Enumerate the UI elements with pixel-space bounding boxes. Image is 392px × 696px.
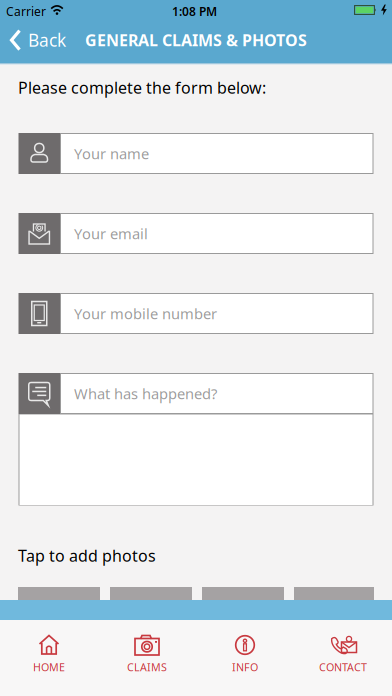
staticText: GENERAL CLAIMS & PHOTOS [85, 29, 307, 51]
button[interactable]: Add photo [202, 587, 284, 601]
button[interactable]: Your mobile number [18, 293, 373, 334]
staticText: Back [28, 29, 66, 52]
staticText: INFO [232, 660, 258, 674]
staticText: CLAIMS [127, 660, 167, 674]
button[interactable]: Your email [18, 213, 373, 254]
staticText: Please complete the form below: [18, 77, 266, 98]
staticText: Carrier [6, 3, 46, 19]
button[interactable]: HOME [0, 620, 98, 696]
button[interactable]: What has happened? [18, 373, 373, 505]
staticText: HOME [33, 660, 65, 674]
staticText: Your email [74, 224, 148, 243]
button[interactable]: Your name [18, 133, 373, 174]
staticText: Your name [74, 144, 149, 163]
staticText: 1:08 PM [172, 3, 217, 19]
button[interactable]: CONTACT [294, 620, 392, 696]
button[interactable]: Add photo [294, 587, 374, 601]
staticText: Tap to add photos [18, 545, 156, 566]
button[interactable]: CLAIMS [98, 620, 196, 696]
button[interactable]: Back [9, 19, 66, 62]
staticText: Your mobile number [74, 304, 217, 323]
staticText: What has happened? [74, 384, 217, 403]
button[interactable]: INFO [196, 620, 294, 696]
staticText: CONTACT [319, 660, 367, 674]
button[interactable]: Add photo [18, 587, 100, 601]
button[interactable]: Add photo [110, 587, 192, 601]
